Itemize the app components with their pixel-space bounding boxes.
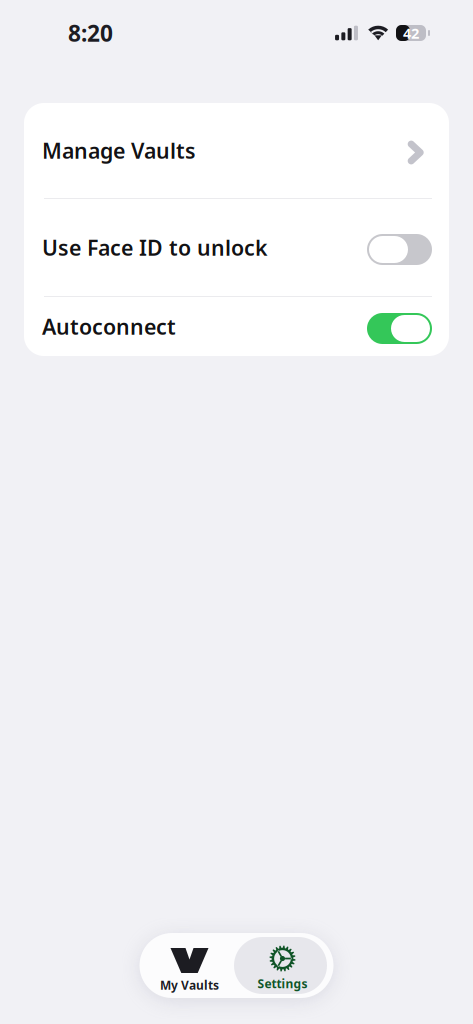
button[interactable]: Use Face ID to unlock [24,199,449,296]
button[interactable]: My Vaults [143,942,235,998]
button[interactable]: Autoconnect [24,297,449,356]
staticText: Manage Vaults [42,136,196,165]
staticText: My Vaults [160,977,219,993]
button[interactable]: Manage Vaults [24,103,449,198]
staticText: 42 [403,23,419,43]
staticText: Use Face ID to unlock [42,233,268,262]
staticText: 8:20 [68,18,113,48]
button[interactable]: Settings [234,937,327,994]
staticText: Autoconnect [42,312,176,341]
staticText: Settings [257,975,307,991]
